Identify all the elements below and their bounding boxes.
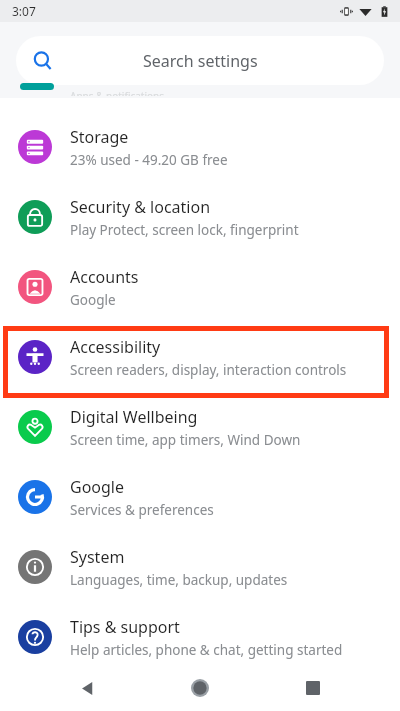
staticText: Apps & notifications bbox=[70, 89, 165, 96]
staticText: Screen time, app timers, Wind Down bbox=[70, 431, 301, 449]
button[interactable]: Security & location bbox=[0, 182, 400, 252]
button[interactable]: Search settings bbox=[16, 36, 384, 85]
staticText: Play Protect, screen lock, fingerprint bbox=[70, 221, 299, 239]
staticText: Google bbox=[70, 476, 125, 498]
staticText: Screen readers, display, interaction con… bbox=[70, 361, 347, 379]
button[interactable]: System bbox=[0, 532, 400, 602]
button[interactable]: Tips & support bbox=[0, 602, 400, 672]
staticText: 23% used - 49.20 GB free bbox=[70, 151, 228, 169]
staticText: Help articles, phone & chat, getting sta… bbox=[70, 641, 343, 659]
button[interactable]: Back bbox=[70, 671, 104, 705]
button[interactable]: Accessibility bbox=[0, 322, 400, 392]
staticText: Search settings bbox=[143, 50, 258, 72]
staticText: Accounts bbox=[70, 266, 139, 288]
button[interactable]: Recents bbox=[296, 671, 330, 705]
staticText: Tips & support bbox=[70, 616, 180, 638]
button[interactable]: Google bbox=[0, 462, 400, 532]
staticText: Accessibility bbox=[70, 336, 161, 358]
staticText: Security & location bbox=[70, 196, 211, 218]
staticText: Languages, time, backup, updates bbox=[70, 571, 288, 589]
button[interactable]: Storage bbox=[0, 112, 400, 182]
button[interactable]: Home bbox=[183, 671, 217, 705]
button[interactable]: Digital Wellbeing bbox=[0, 392, 400, 462]
staticText: Storage bbox=[70, 126, 129, 148]
button[interactable]: Accounts bbox=[0, 252, 400, 322]
staticText: Digital Wellbeing bbox=[70, 406, 198, 428]
staticText: System bbox=[70, 546, 125, 568]
staticText: 3:07 bbox=[12, 3, 36, 19]
staticText: Google bbox=[70, 291, 116, 309]
staticText: Services & preferences bbox=[70, 501, 214, 519]
